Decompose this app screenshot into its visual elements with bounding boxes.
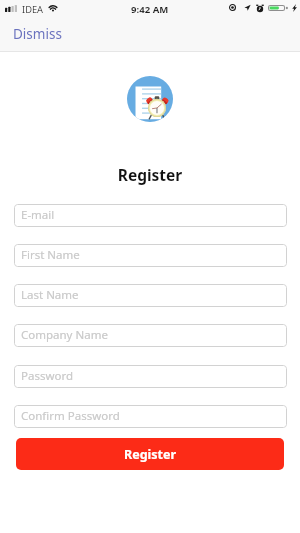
- staticText: E-mail: [21, 207, 55, 223]
- staticText: Register: [124, 446, 177, 463]
- button[interactable]: E-mail: [14, 204, 287, 227]
- staticText: Dismiss: [13, 25, 62, 43]
- button[interactable]: Company Name: [14, 324, 287, 347]
- button[interactable]: Register: [16, 438, 284, 470]
- staticText: Confirm Password: [21, 408, 120, 424]
- staticText: Last Name: [21, 287, 79, 303]
- button[interactable]: First Name: [14, 244, 287, 267]
- staticText: Password: [21, 368, 74, 384]
- staticText: First Name: [21, 247, 80, 263]
- staticText: Company Name: [21, 327, 108, 343]
- button[interactable]: Confirm Password: [14, 405, 287, 428]
- button[interactable]: Password: [14, 365, 287, 388]
- button[interactable]: Dismiss: [13, 24, 62, 44]
- staticText: 9:42 AM: [131, 3, 169, 16]
- other: App logo: [127, 76, 173, 122]
- staticText: Register: [0, 164, 300, 185]
- button[interactable]: Last Name: [14, 284, 287, 307]
- staticText: IDEA: [22, 3, 44, 16]
